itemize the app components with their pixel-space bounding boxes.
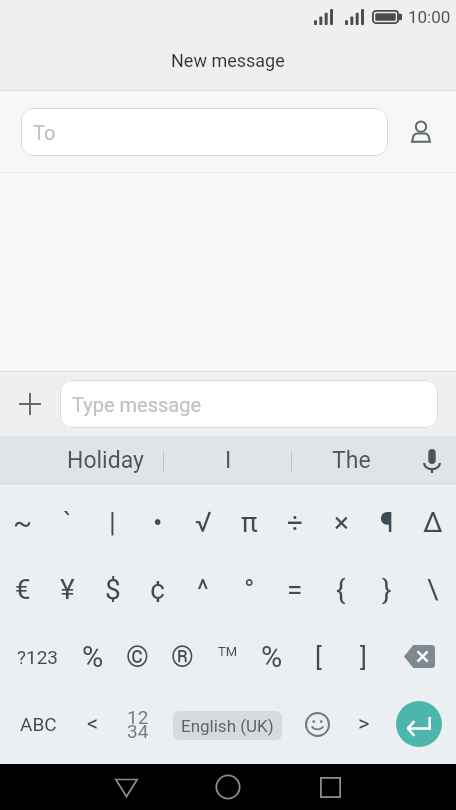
button[interactable]: = [272,556,318,623]
button[interactable]: % [249,623,294,690]
staticText: The [332,447,371,474]
button[interactable]: © [115,623,160,690]
staticText: < [87,711,99,737]
button[interactable]: π [226,489,272,556]
button[interactable]: ?123 [12,623,64,690]
button[interactable]: Voice input [408,436,456,485]
button[interactable]: Δ [410,489,456,556]
button[interactable]: ] [341,623,386,690]
button[interactable]: ¶ [364,489,410,556]
button[interactable]: [ [296,623,341,690]
staticText: Type message [72,393,201,416]
staticText: [ [315,642,322,672]
staticText: ¥ [60,573,75,606]
staticText: % [261,640,283,674]
button[interactable]: ÷ [272,489,318,556]
button[interactable]: } [364,556,410,623]
staticText: × [334,506,349,539]
button[interactable]: { [318,556,364,623]
button[interactable]: Back [92,764,160,810]
button[interactable]: ~ [0,489,45,556]
button[interactable]: $ [90,556,135,623]
staticText: I [225,447,232,474]
button[interactable]: ° [226,556,272,623]
button[interactable]: Enter [396,701,442,747]
button[interactable]: 12 [115,690,161,758]
staticText: To [33,121,56,144]
staticText: ® [171,640,194,674]
staticText: ?123 [17,646,59,668]
button[interactable]: Emoji [294,690,340,758]
button[interactable]: × [318,489,364,556]
staticText: • [153,506,163,539]
button[interactable]: Choose contact [399,110,443,154]
button[interactable]: Home [194,764,262,810]
staticText: ` [63,506,72,539]
staticText: { [336,573,346,606]
staticText: ~ [13,506,33,539]
button[interactable]: ` [45,489,90,556]
button[interactable]: I [164,436,292,485]
button[interactable]: The [292,436,410,485]
staticText: | [109,506,116,539]
staticText: ¶ [380,506,394,539]
staticText: Δ [423,506,443,539]
button[interactable]: Holiday [46,436,164,485]
staticText: € [15,573,31,606]
button[interactable]: > [341,690,386,758]
button[interactable]: % [70,623,115,690]
button[interactable]: \ [410,556,456,623]
button[interactable]: ® [160,623,205,690]
staticText: √ [195,506,212,539]
staticText: ¢ [150,573,166,606]
button[interactable]: • [135,489,180,556]
button[interactable]: √ [180,489,226,556]
staticText: ÷ [287,506,303,539]
staticText: 12 [127,706,149,728]
button[interactable]: ^ [180,556,226,623]
button[interactable]: Type message [60,380,438,428]
button[interactable]: € [0,556,45,623]
staticText: © [126,640,149,674]
staticText: } [382,573,392,606]
button[interactable]: < [70,690,115,758]
staticText: 10:00 [408,7,451,27]
staticText: $ [105,573,121,606]
staticText: New message [171,50,285,71]
staticText: ° [244,573,255,606]
button[interactable]: Delete [392,623,447,690]
button[interactable]: Add attachment [8,382,52,426]
staticText: Holiday [67,447,144,474]
staticText: % [82,640,104,674]
button[interactable]: TM [205,623,250,690]
staticText: English (UK) [181,716,274,736]
staticText: \ [427,573,439,606]
button[interactable]: To [21,108,388,156]
staticText: TM [218,644,238,659]
staticText: ^ [197,573,209,606]
button[interactable]: ¢ [135,556,180,623]
button[interactable]: | [90,489,135,556]
staticText: ABC [20,713,57,735]
staticText: = [287,573,303,606]
button[interactable]: ABC [12,690,64,758]
staticText: ] [360,642,367,672]
staticText: > [358,711,370,737]
button[interactable]: Recents [296,764,364,810]
button[interactable]: ¥ [45,556,90,623]
button[interactable]: English (UK) [173,711,282,740]
staticText: π [241,506,258,539]
staticText: 34 [127,720,149,742]
